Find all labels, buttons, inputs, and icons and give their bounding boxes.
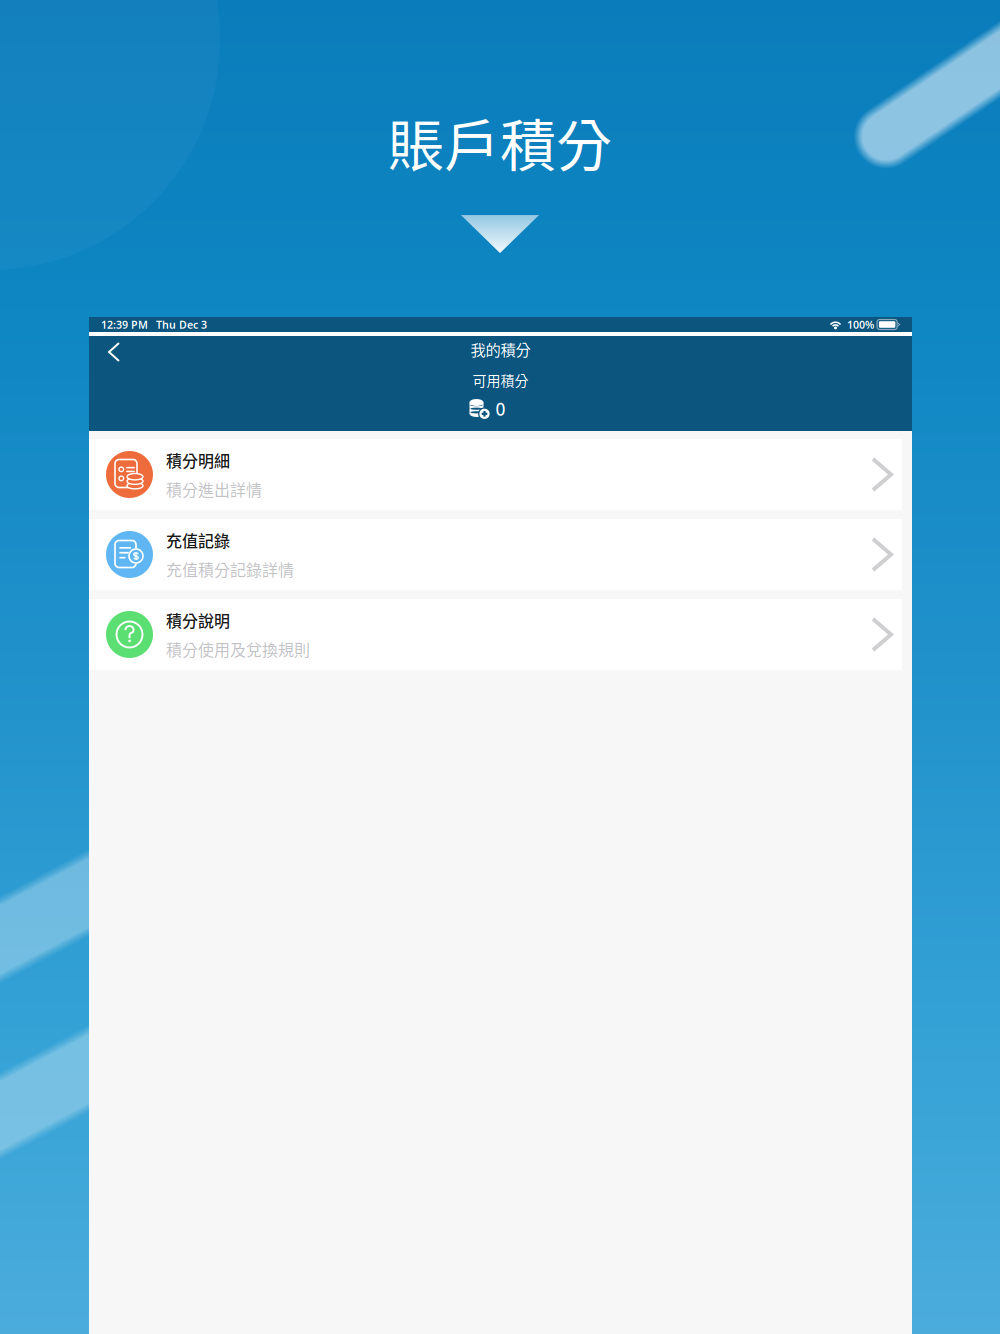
staticText: 積分進出詳情	[166, 477, 262, 501]
staticText: Thu Dec 3	[156, 317, 207, 332]
staticText: 賬戶積分	[388, 101, 612, 182]
staticText: 充值積分記錄詳情	[166, 557, 294, 581]
staticText: 0	[495, 397, 505, 420]
button[interactable]: Back	[92, 330, 136, 374]
staticText: 可用積分	[472, 370, 528, 390]
staticText: 積分使用及兌換規則	[166, 637, 310, 661]
button[interactable]: 充值記錄	[89, 519, 902, 590]
staticText: 100%	[847, 317, 874, 332]
staticText: 12:39 PM	[101, 317, 148, 332]
button[interactable]: 積分明細	[89, 439, 902, 510]
button[interactable]: 積分說明	[89, 599, 902, 670]
staticText: 充值記錄	[166, 528, 230, 551]
staticText: 積分說明	[166, 608, 230, 631]
staticText: 積分明細	[166, 448, 230, 471]
staticText: 我的積分	[470, 338, 530, 360]
